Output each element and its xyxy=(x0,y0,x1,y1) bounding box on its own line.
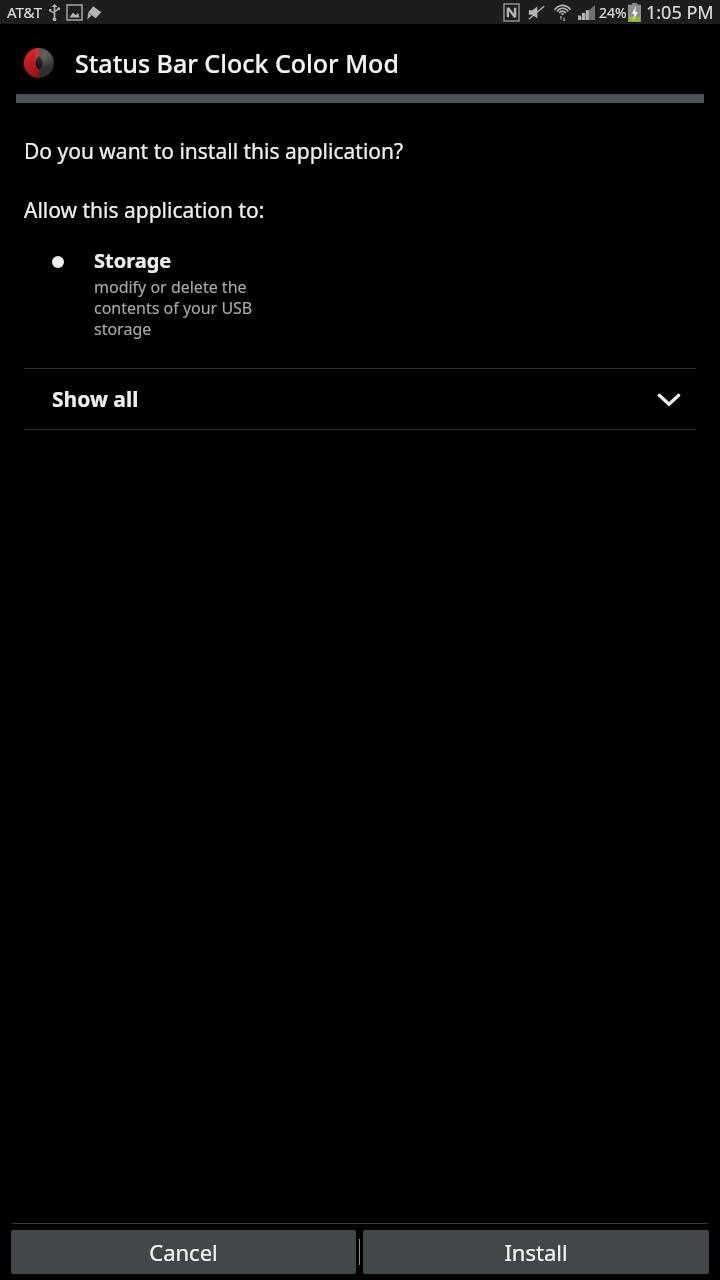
staticText: Allow this application to: xyxy=(24,196,265,225)
staticText: Status Bar Clock Color Mod xyxy=(75,46,399,80)
staticText: 24% xyxy=(599,3,627,22)
staticText: Do you want to install this application? xyxy=(24,137,404,166)
button[interactable]: Storage xyxy=(0,243,720,344)
staticText: AT&T xyxy=(7,2,42,22)
staticText: modify or delete the contents of your US… xyxy=(94,276,309,340)
button[interactable]: Install xyxy=(363,1230,709,1274)
other: Show all permissions xyxy=(656,386,682,412)
staticText: Storage xyxy=(94,247,172,274)
staticText: Show all xyxy=(52,385,139,414)
staticText: Cancel xyxy=(149,1237,218,1267)
button[interactable]: Cancel xyxy=(11,1230,356,1274)
staticText: Install xyxy=(504,1237,568,1267)
button[interactable]: Show all xyxy=(0,369,720,429)
staticText: 1:05 PM xyxy=(646,0,714,24)
